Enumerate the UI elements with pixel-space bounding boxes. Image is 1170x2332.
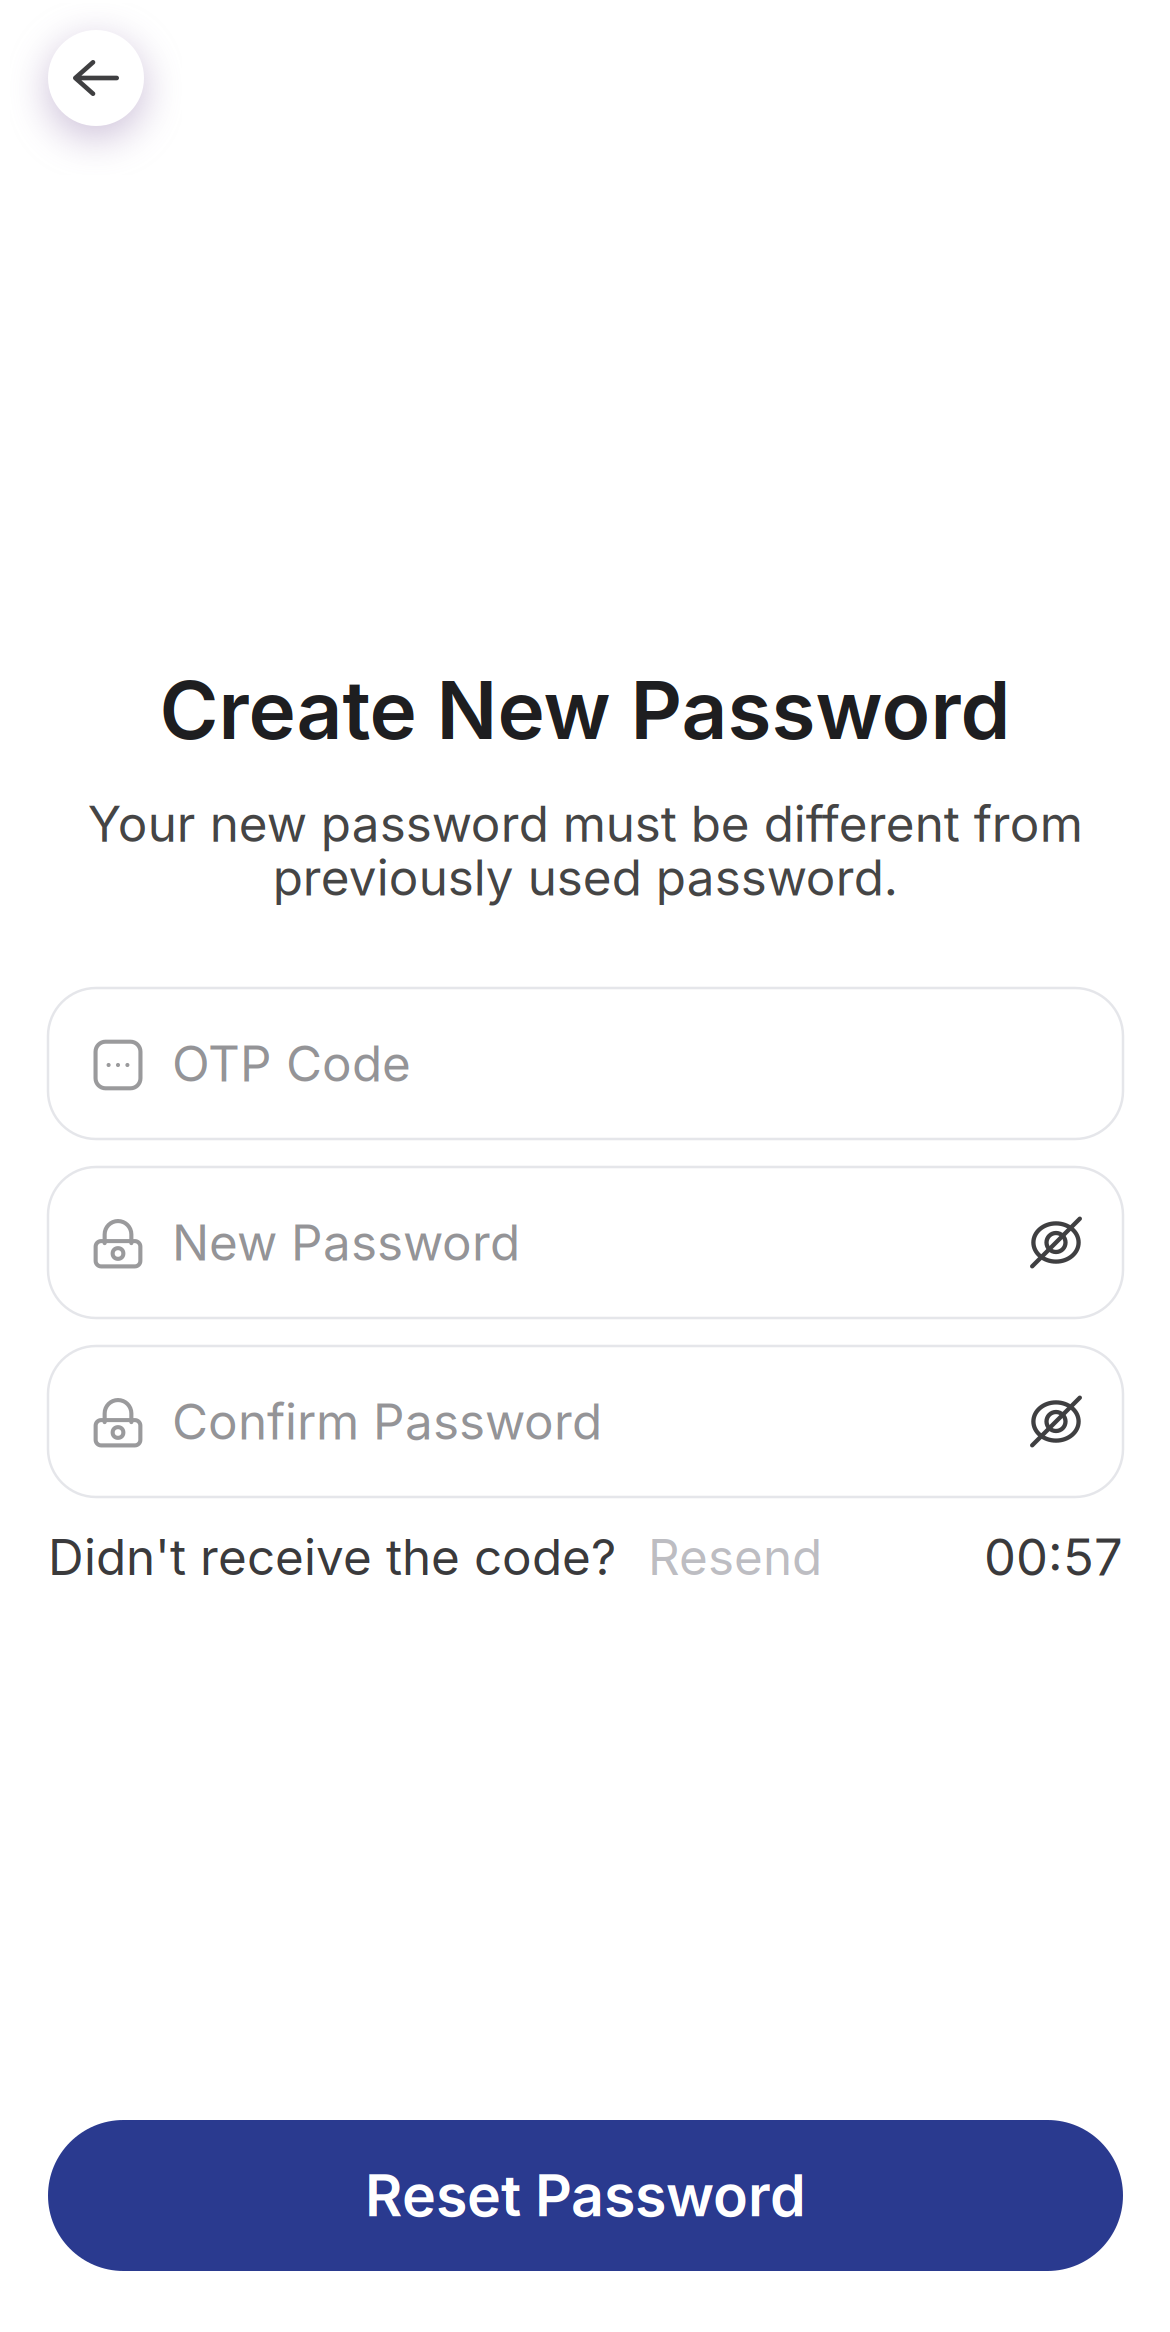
- staticText: Reset Password: [365, 2161, 806, 2230]
- staticText: 00:57: [984, 1526, 1123, 1588]
- staticText: Create New Password: [159, 662, 1010, 758]
- staticText: Didn't receive the code?: [48, 1527, 616, 1587]
- staticText: Your new password must be different from…: [87, 794, 1082, 907]
- button[interactable]: Show new password: [1031, 1217, 1081, 1267]
- button[interactable]: Show confirm password: [1031, 1396, 1081, 1446]
- staticText: OTP Code: [172, 1034, 411, 1093]
- button[interactable]: Resend: [616, 1527, 822, 1587]
- button[interactable]: Back: [48, 30, 144, 126]
- staticText: Resend: [648, 1527, 822, 1587]
- staticText: New Password: [172, 1213, 520, 1272]
- button[interactable]: Reset Password: [48, 2120, 1123, 2271]
- staticText: Confirm Password: [172, 1392, 602, 1451]
